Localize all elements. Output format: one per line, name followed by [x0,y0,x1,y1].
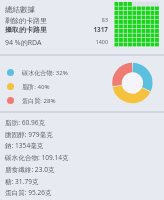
button[interactable]: 碳水化合物: 109.14克 [5,152,164,163]
staticText: 1400 [95,38,108,45]
staticText: 碳水化合物: 109.14克 [5,153,69,162]
staticText: 鈉: 1354毫克 [5,141,44,150]
staticText: 膳食纖維: 23.0克 [5,165,55,174]
staticText: 83 [101,16,108,23]
staticText: 攝取的卡路里 [5,25,47,34]
staticText: 脂肪: 40% [22,82,50,90]
button[interactable]: 鈉: 1354毫克 [5,140,164,151]
button[interactable]: 蛋白質: 28% [7,96,56,104]
button[interactable]: 膽固醇: 979毫克 [5,129,164,140]
button[interactable]: 碳水化合物: 32% [7,68,68,76]
button[interactable]: 脂肪: 60.96克 [5,117,164,128]
button[interactable]: 總結數據 [5,5,35,14]
button[interactable]: 膳食纖維: 23.0克 [5,164,164,175]
button[interactable]: 剩餘的卡路里 [5,16,108,25]
staticText: 94 %的RDA [5,38,42,47]
staticText: 蛋白質: 28% [22,96,56,104]
staticText: 剩餘的卡路里 [5,16,47,25]
staticText: 1317 [93,25,108,34]
staticText: 糖: 31.79克 [5,177,39,186]
button[interactable]: 蛋白質: 95.26克 [5,187,164,198]
staticText: 總結數據 [5,5,35,14]
staticText: 膽固醇: 979毫克 [5,130,53,139]
staticText: 碳水化合物: 32% [22,68,68,76]
staticText: 脂肪: 60.96克 [5,118,46,127]
button[interactable]: 94 %的RDA [5,38,108,47]
staticText: 蛋白質: 95.26克 [5,188,52,197]
button[interactable]: 脂肪: 40% [7,82,50,90]
button[interactable]: 攝取的卡路里 [5,25,108,34]
button[interactable]: 糖: 31.79克 [5,176,164,187]
